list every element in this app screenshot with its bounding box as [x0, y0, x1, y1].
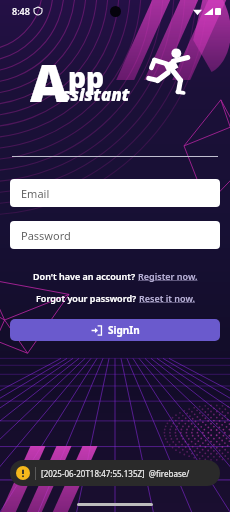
button[interactable]: Password	[10, 221, 220, 249]
button[interactable]: SignIn	[10, 319, 220, 341]
staticText: Forgot your password?	[36, 292, 139, 304]
staticText: SignIn	[108, 323, 140, 337]
staticText: pp	[68, 58, 105, 96]
button[interactable]: [2025-06-20T18:47:55.135Z] @firebase/aut…	[10, 460, 220, 486]
staticText: 8:48	[12, 5, 30, 17]
staticText: Password	[21, 228, 71, 243]
staticText: [2025-06-20T18:47:55.135Z] @firebase/aut…	[41, 468, 214, 479]
staticText: Reset it now.	[139, 292, 195, 304]
staticText: Register now.	[138, 270, 198, 282]
button[interactable]: Forgot your password?	[0, 291, 230, 305]
staticText: Email	[21, 186, 50, 201]
staticText: A	[30, 46, 68, 117]
staticText: ssistant	[62, 83, 130, 106]
button[interactable]: Email	[10, 179, 220, 207]
staticText: Don't have an account?	[33, 270, 138, 282]
other: Running figure logo	[142, 44, 194, 96]
button[interactable]: Don't have an account?	[0, 269, 230, 283]
